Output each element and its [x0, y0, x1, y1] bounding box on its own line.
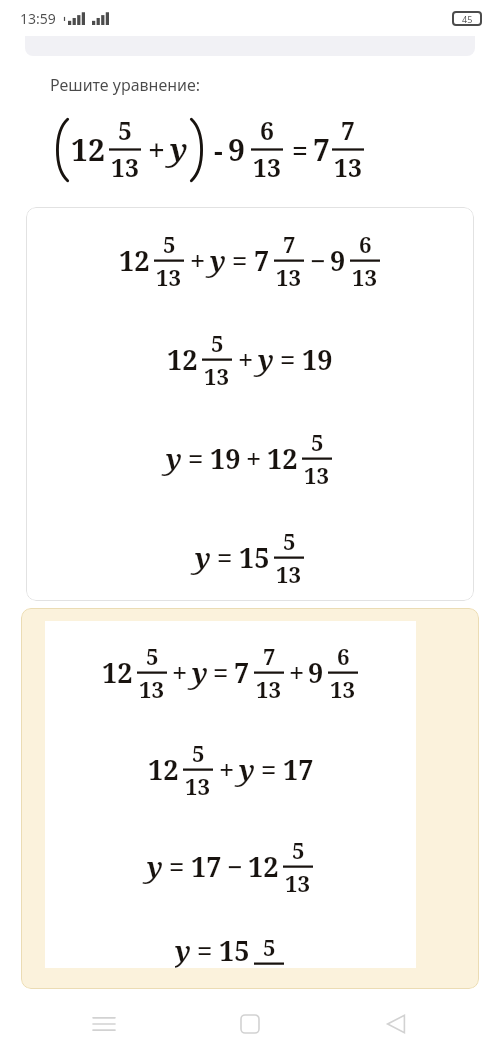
- staticText: 15: [239, 539, 270, 576]
- staticText: -: [214, 131, 223, 169]
- staticText: 5: [263, 932, 276, 962]
- staticText: y: [239, 751, 255, 788]
- staticText: 13: [253, 151, 281, 185]
- staticText: 13: [111, 151, 139, 185]
- staticText: 5: [311, 427, 324, 457]
- staticText: 7: [234, 654, 250, 691]
- staticText: 12: [167, 341, 198, 378]
- staticText: 13: [304, 460, 330, 490]
- staticText: y: [192, 654, 208, 691]
- staticText: +: [148, 129, 165, 170]
- staticText: 5: [211, 328, 224, 358]
- staticText: 13: [256, 674, 282, 704]
- staticText: 13: [156, 262, 182, 292]
- staticText: 5: [192, 738, 205, 768]
- staticText: 19: [302, 341, 333, 378]
- staticText: 9: [308, 654, 324, 691]
- button[interactable]: Home: [226, 1000, 274, 1048]
- staticText: 5: [146, 641, 159, 671]
- staticText: 13: [204, 361, 230, 391]
- staticText: 17: [283, 751, 314, 788]
- staticText: +: [219, 751, 235, 788]
- staticText: 19: [210, 440, 241, 477]
- staticText: +: [172, 654, 188, 691]
- staticText: +: [246, 440, 262, 477]
- staticText: +: [190, 242, 206, 279]
- staticText: 12: [148, 751, 179, 788]
- staticText: y: [175, 932, 191, 968]
- staticText: 13:59: [20, 9, 56, 28]
- staticText: =: [217, 539, 233, 576]
- staticText: 6: [337, 641, 350, 671]
- staticText: 7: [313, 129, 330, 170]
- staticText: 7: [263, 641, 276, 671]
- staticText: 13: [139, 674, 165, 704]
- staticText: 7: [254, 242, 270, 279]
- staticText: 5: [283, 526, 296, 556]
- staticText: y: [210, 242, 226, 279]
- staticText: y: [170, 129, 188, 170]
- staticText: 7: [341, 114, 355, 148]
- staticText: =: [169, 848, 185, 885]
- staticText: 12: [267, 440, 298, 477]
- staticText: 13: [334, 151, 362, 185]
- staticText: 45: [462, 13, 473, 25]
- staticText: 13: [330, 674, 356, 704]
- staticText: 12: [102, 654, 133, 691]
- staticText: +: [289, 654, 305, 691]
- staticText: =: [197, 932, 213, 968]
- staticText: −: [310, 242, 326, 279]
- staticText: =: [232, 242, 248, 279]
- staticText: 13: [185, 771, 211, 801]
- staticText: 12: [248, 848, 279, 885]
- button[interactable]: Recent apps: [80, 1000, 128, 1048]
- staticText: 17: [191, 848, 222, 885]
- staticText: y: [166, 440, 182, 477]
- staticText: y: [147, 848, 163, 885]
- button[interactable]: Back: [372, 1000, 420, 1048]
- staticText: 12: [71, 129, 105, 170]
- staticText: =: [261, 751, 277, 788]
- staticText: 13: [276, 262, 302, 292]
- staticText: 7: [283, 229, 296, 259]
- staticText: =: [188, 440, 204, 477]
- button[interactable]: 12: [21, 608, 479, 989]
- staticText: 5: [163, 229, 176, 259]
- staticText: 15: [219, 932, 250, 968]
- staticText: 12: [119, 242, 150, 279]
- staticText: 6: [359, 229, 372, 259]
- staticText: y: [258, 341, 274, 378]
- staticText: 5: [292, 835, 305, 865]
- staticText: y: [195, 539, 211, 576]
- staticText: 9: [330, 242, 346, 279]
- staticText: −: [227, 848, 243, 885]
- staticText: =: [213, 654, 229, 691]
- staticText: 6: [260, 114, 274, 148]
- staticText: 9: [228, 129, 245, 170]
- staticText: 13: [352, 262, 378, 292]
- staticText: +: [238, 341, 254, 378]
- staticText: Решите уравнение:: [50, 74, 201, 96]
- staticText: =: [292, 131, 308, 169]
- staticText: 13: [276, 559, 302, 589]
- staticText: =: [280, 341, 296, 378]
- staticText: 5: [118, 114, 132, 148]
- staticText: 13: [285, 868, 311, 898]
- button[interactable]: 12: [26, 207, 474, 601]
